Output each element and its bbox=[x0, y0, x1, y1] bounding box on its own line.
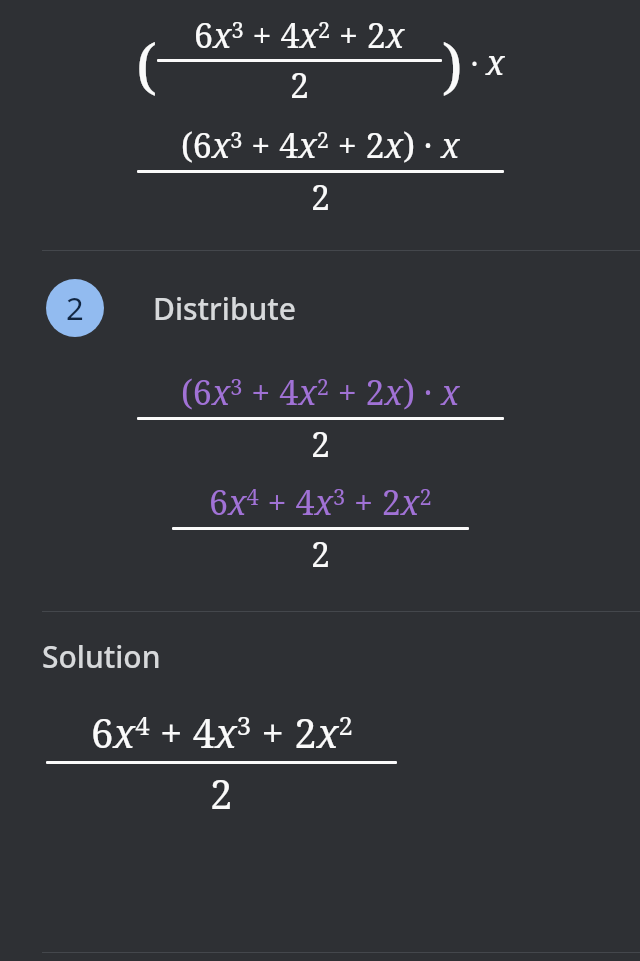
staticText: 2 bbox=[290, 62, 310, 108]
staticText: 2 bbox=[311, 421, 331, 467]
staticText: 2 bbox=[210, 766, 233, 820]
staticText: (6x3 + 4x2 + 2x) · x bbox=[181, 122, 460, 168]
staticText: 6x4 + 4x3 + 2x2 bbox=[91, 705, 353, 759]
staticText: ) bbox=[442, 24, 463, 106]
staticText: Solution bbox=[42, 636, 161, 677]
staticText: 2 bbox=[311, 531, 331, 577]
staticText: ( bbox=[136, 24, 157, 106]
staticText: Distribute bbox=[153, 288, 297, 329]
staticText: 6x4 + 4x3 + 2x2 bbox=[209, 479, 432, 525]
staticText: (6x3 + 4x2 + 2x) · x bbox=[181, 369, 460, 415]
staticText: · x bbox=[463, 39, 505, 85]
staticText: 2 bbox=[66, 287, 84, 329]
staticText: 6x3 + 4x2 + 2x bbox=[194, 12, 405, 58]
staticText: 2 bbox=[311, 174, 331, 220]
button[interactable]: 2 bbox=[0, 275, 640, 341]
